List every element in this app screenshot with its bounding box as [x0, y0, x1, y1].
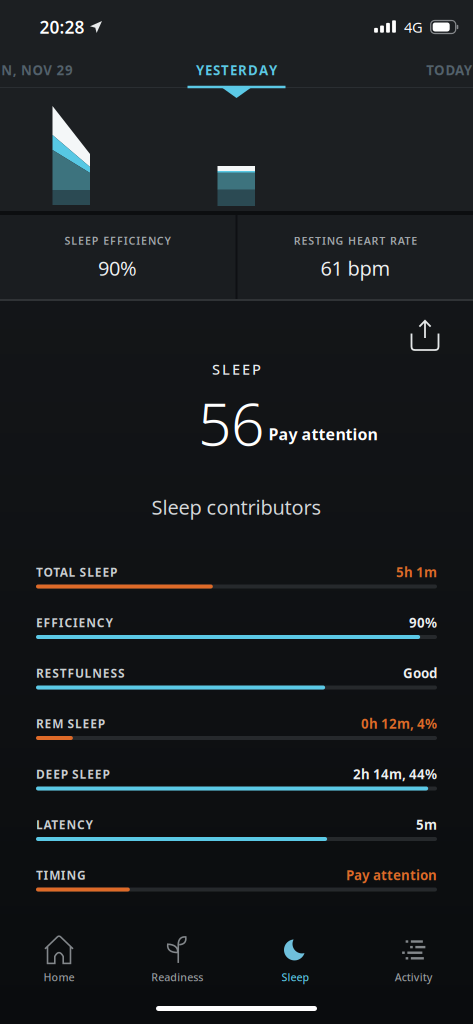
staticText: 56: [198, 384, 264, 462]
staticText: Sleep: [281, 970, 309, 984]
staticText: 5h 1m: [396, 563, 437, 581]
button[interactable]: Activity: [355, 930, 473, 990]
staticText: 20:28: [39, 15, 84, 38]
button[interactable]: Share: [405, 314, 444, 356]
staticText: Readiness: [151, 970, 203, 984]
staticText: TODAY: [426, 61, 472, 79]
staticText: RESTFULNESS: [36, 665, 125, 681]
staticText: TOTAL SLEEP: [36, 564, 117, 580]
staticText: Y E S T E R D A Y: [196, 61, 277, 79]
staticText: 61 bpm: [320, 255, 390, 281]
staticText: Pay attention: [268, 423, 377, 445]
staticText: 90%: [98, 255, 137, 281]
button[interactable]: TODAY: [426, 61, 472, 79]
staticText: RESTING HEART RATE: [294, 234, 417, 248]
button[interactable]: Y E S T E R D A Y: [196, 61, 277, 79]
staticText: 5m: [416, 816, 437, 833]
button[interactable]: RESTING HEART RATE: [238, 215, 472, 299]
staticText: Home: [43, 970, 74, 984]
staticText: DEEP SLEEP: [36, 766, 109, 782]
staticText: 0h 12m, 4%: [361, 715, 437, 732]
button[interactable]: Readiness: [118, 930, 236, 990]
staticText: SLEEP EFFICIENCY: [64, 234, 170, 248]
staticText: Sleep contributors: [151, 494, 321, 520]
staticText: 4G: [404, 17, 423, 37]
button[interactable]: SUN, NOV 29: [0, 61, 73, 79]
staticText: SUN, NOV 29: [0, 61, 73, 79]
staticText: EFFICIENCY: [36, 614, 113, 630]
button[interactable]: SLEEP EFFICIENCY: [0, 215, 234, 299]
button[interactable]: Home: [0, 930, 118, 990]
staticText: Activity: [395, 970, 433, 984]
staticText: 90%: [409, 614, 437, 631]
staticText: 2h 14m, 44%: [353, 765, 437, 783]
staticText: S L E E P: [212, 359, 261, 379]
staticText: LATENCY: [36, 816, 94, 832]
staticText: TIMING: [36, 867, 86, 883]
button[interactable]: Sleep: [236, 930, 354, 990]
staticText: REM SLEEP: [36, 715, 105, 731]
staticText: Good: [403, 664, 437, 682]
staticText: Pay attention: [346, 866, 437, 884]
